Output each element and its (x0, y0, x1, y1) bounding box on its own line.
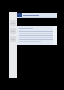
button[interactable]: Rail item 2 (10, 28, 16, 34)
button[interactable]: Menu (17, 13, 57, 17)
button[interactable] (17, 26, 57, 45)
button[interactable]: Rail item 1 (10, 20, 16, 26)
button[interactable]: Rail item 3 (10, 36, 16, 42)
